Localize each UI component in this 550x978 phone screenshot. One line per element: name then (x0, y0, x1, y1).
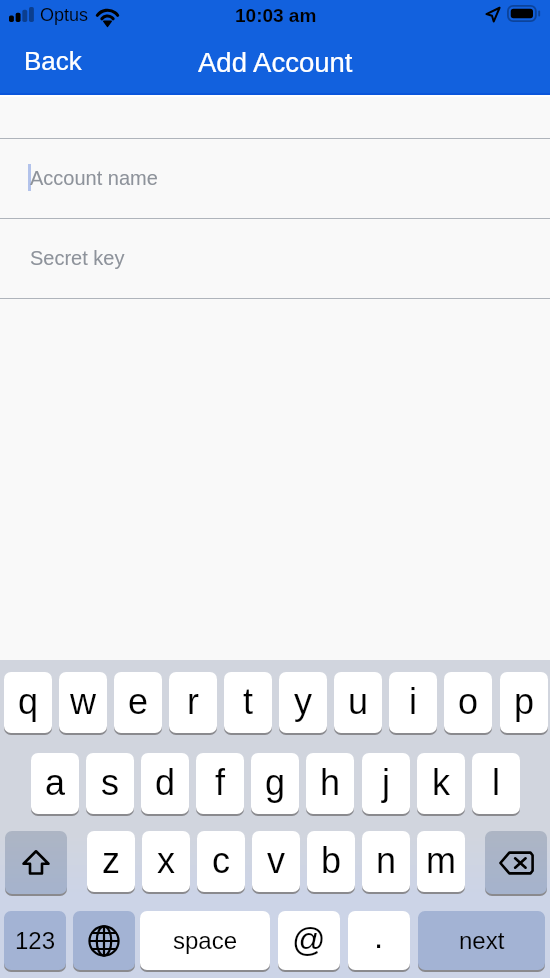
staticText: e (128, 681, 149, 721)
staticText: d (155, 762, 176, 802)
button[interactable]: Shift (5, 831, 67, 894)
staticText: i (409, 681, 417, 721)
button[interactable]: j (362, 753, 410, 814)
button[interactable]: 123 (4, 911, 66, 970)
staticText: q (18, 681, 39, 721)
staticText: x (157, 840, 175, 880)
button[interactable]: h (306, 753, 354, 814)
button[interactable]: space (140, 911, 270, 970)
staticText: o (458, 681, 479, 721)
staticText: next (459, 927, 505, 954)
staticText: w (70, 681, 96, 721)
staticText: Back (24, 46, 82, 75)
staticText: t (243, 681, 254, 721)
staticText: v (267, 840, 285, 880)
button[interactable]: c (197, 831, 245, 892)
button[interactable]: Account name (0, 139, 550, 218)
button[interactable]: Back (12, 38, 94, 82)
staticText: l (492, 762, 500, 802)
button[interactable]: Secret key (0, 219, 550, 298)
staticText: j (382, 762, 390, 802)
staticText: Add Account (198, 47, 353, 78)
staticText: Optus (40, 5, 89, 25)
button[interactable]: g (251, 753, 299, 814)
staticText: n (376, 840, 397, 880)
button[interactable]: k (417, 753, 465, 814)
staticText: u (348, 681, 369, 721)
staticText: p (514, 681, 535, 721)
staticText: z (102, 840, 120, 880)
button[interactable]: z (87, 831, 135, 892)
button[interactable]: s (86, 753, 134, 814)
button[interactable]: q (4, 672, 52, 733)
button[interactable]: n (362, 831, 410, 892)
staticText: . (374, 918, 384, 955)
staticText: g (265, 762, 286, 802)
button[interactable]: @ (278, 911, 340, 970)
staticText: h (320, 762, 341, 802)
button[interactable]: v (252, 831, 300, 892)
button[interactable]: next (418, 911, 545, 970)
button[interactable]: r (169, 672, 217, 733)
button[interactable]: u (334, 672, 382, 733)
button[interactable]: e (114, 672, 162, 733)
button[interactable]: a (31, 753, 79, 814)
button[interactable]: l (472, 753, 520, 814)
button[interactable]: d (141, 753, 189, 814)
staticText: b (321, 840, 342, 880)
staticText: r (187, 681, 199, 721)
button[interactable]: Backspace (485, 831, 547, 894)
staticText: y (294, 681, 312, 721)
button[interactable]: p (500, 672, 548, 733)
staticText: Secret key (30, 247, 125, 269)
button[interactable]: o (444, 672, 492, 733)
staticText: @ (292, 921, 326, 958)
staticText: m (426, 840, 456, 880)
staticText: f (215, 762, 226, 802)
staticText: 10:03 am (235, 5, 317, 26)
staticText: s (101, 762, 119, 802)
staticText: space (173, 927, 238, 954)
button[interactable]: y (279, 672, 327, 733)
button[interactable]: Switch keyboard (73, 911, 135, 970)
button[interactable]: t (224, 672, 272, 733)
button[interactable]: f (196, 753, 244, 814)
staticText: c (212, 840, 230, 880)
button[interactable]: . (348, 911, 410, 970)
staticText: a (45, 762, 66, 802)
staticText: k (432, 762, 450, 802)
staticText: 123 (15, 927, 56, 954)
button[interactable]: b (307, 831, 355, 892)
button[interactable]: x (142, 831, 190, 892)
button[interactable]: i (389, 672, 437, 733)
staticText: Account name (30, 167, 158, 189)
button[interactable]: m (417, 831, 465, 892)
button[interactable]: w (59, 672, 107, 733)
